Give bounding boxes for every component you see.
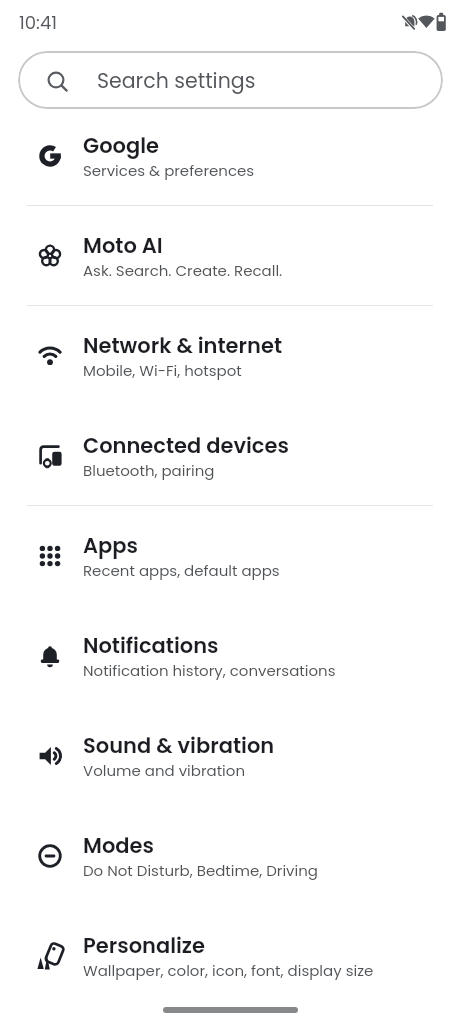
button[interactable]: Moto AI (0, 206, 461, 306)
button[interactable]: Connected devices (0, 406, 461, 506)
staticText: Services & preferences (83, 160, 255, 181)
staticText: Wallpaper, color, icon, font, display si… (83, 960, 374, 981)
staticText: Personalize (83, 931, 205, 960)
staticText: Connected devices (83, 431, 289, 460)
staticText: Apps (83, 531, 138, 560)
staticText: Ask. Search. Create. Recall. (83, 260, 283, 281)
button[interactable]: Google (0, 106, 461, 206)
staticText: Sound & vibration (83, 731, 275, 760)
staticText: Google (83, 131, 159, 160)
staticText: Moto AI (83, 231, 163, 260)
button[interactable]: Notifications (0, 606, 461, 706)
staticText: Notification history, conversations (83, 660, 336, 681)
button[interactable]: Modes (0, 806, 461, 906)
staticText: 10:41 (19, 10, 57, 35)
button[interactable]: Search settings (18, 51, 443, 109)
staticText: Notifications (83, 631, 219, 660)
staticText: Mobile, Wi-Fi, hotspot (83, 360, 242, 381)
button[interactable]: Network & internet (0, 306, 461, 406)
staticText: Modes (83, 831, 154, 860)
staticText: Search settings (97, 66, 256, 95)
staticText: Network & internet (83, 331, 283, 360)
button[interactable]: Personalize (0, 906, 461, 1006)
button[interactable]: Apps (0, 506, 461, 606)
staticText: Do Not Disturb, Bedtime, Driving (83, 860, 318, 881)
button[interactable]: Sound & vibration (0, 706, 461, 806)
staticText: Bluetooth, pairing (83, 460, 215, 481)
staticText: Recent apps, default apps (83, 560, 280, 581)
staticText: Volume and vibration (83, 760, 246, 781)
